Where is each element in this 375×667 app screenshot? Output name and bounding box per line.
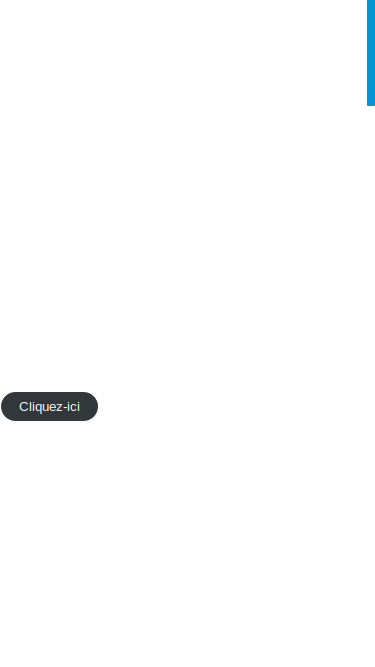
button[interactable]: Cliquez-ici xyxy=(1,392,98,421)
staticText: Cliquez-ici xyxy=(19,399,80,414)
